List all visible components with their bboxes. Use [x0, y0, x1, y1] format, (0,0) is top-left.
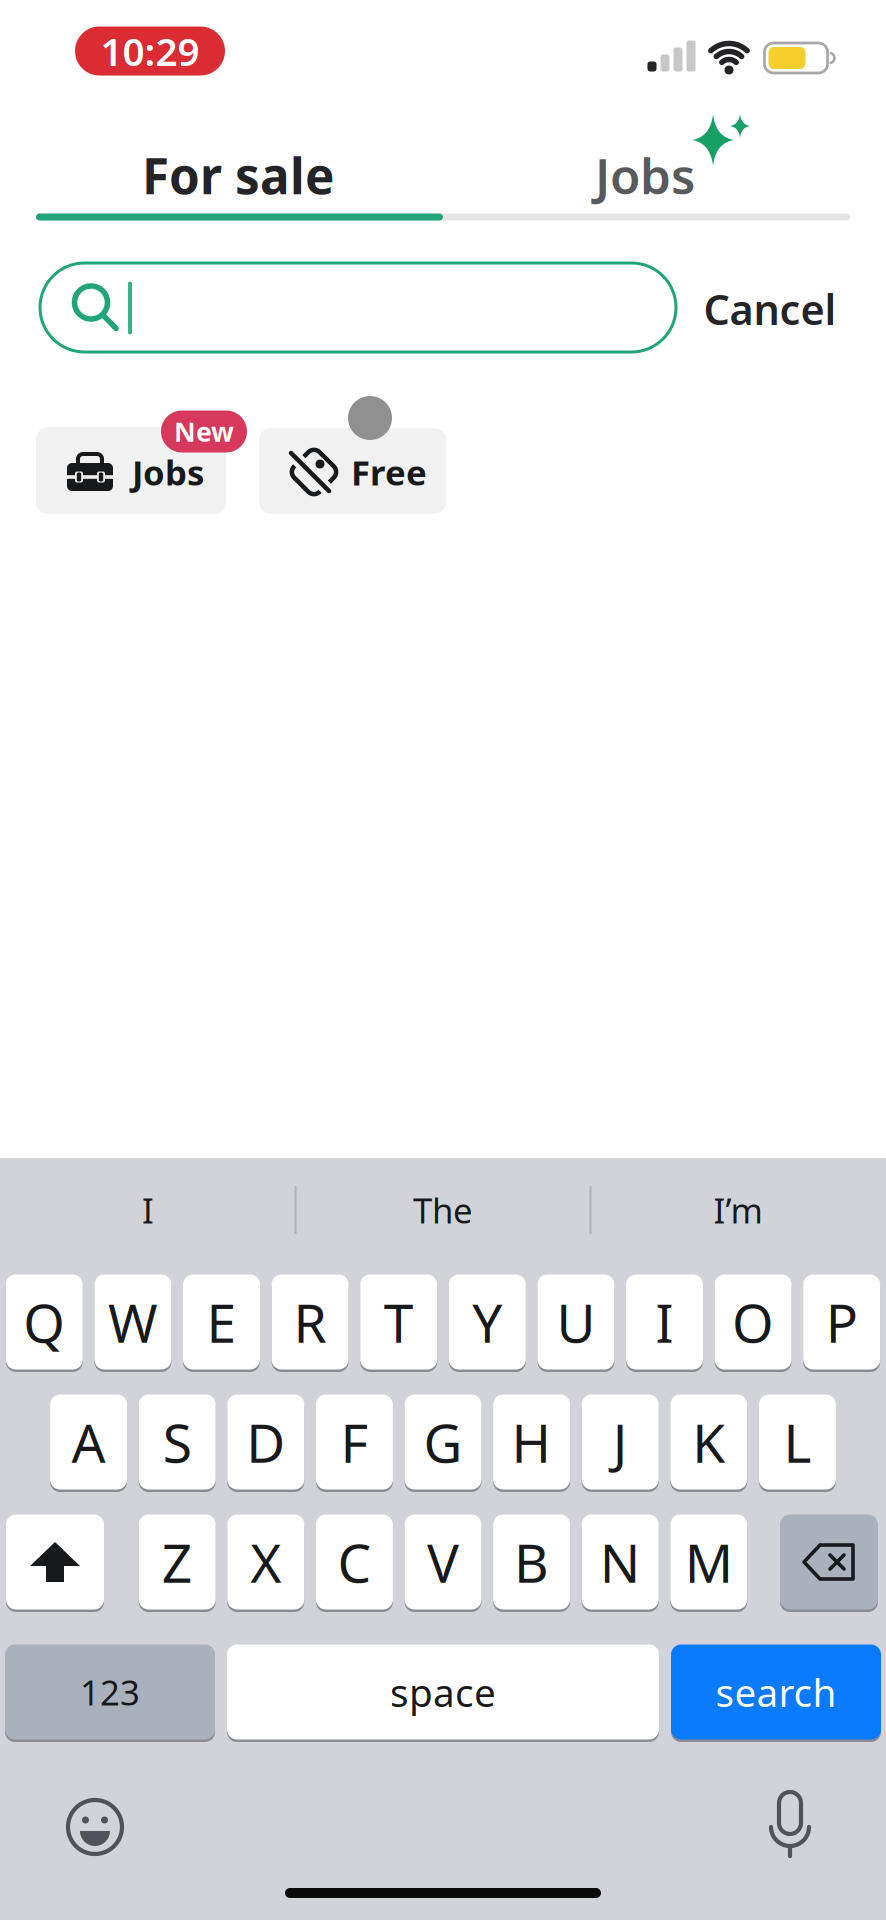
staticText: Z [162, 1527, 193, 1597]
button[interactable]: Jobs [36, 427, 226, 514]
button[interactable]: M [670, 1514, 747, 1612]
button[interactable]: Free [259, 428, 446, 514]
staticText: The [413, 1187, 473, 1233]
staticText: K [692, 1407, 725, 1477]
staticText: H [512, 1407, 552, 1477]
button[interactable]: Emoji [55, 1787, 135, 1867]
button[interactable]: I’m [598, 1165, 878, 1255]
button[interactable]: T [360, 1274, 437, 1372]
staticText: S [163, 1407, 192, 1477]
button[interactable]: K [670, 1394, 747, 1492]
button[interactable]: space [227, 1644, 659, 1742]
staticText: C [337, 1527, 371, 1597]
staticText: G [423, 1407, 462, 1477]
staticText: F [340, 1407, 368, 1477]
button[interactable]: A [50, 1394, 127, 1492]
staticText: search [715, 1666, 836, 1718]
button[interactable]: B [493, 1514, 570, 1612]
button[interactable]: S [139, 1394, 216, 1492]
staticText: B [514, 1527, 549, 1597]
button[interactable]: L [759, 1394, 836, 1492]
staticText: T [384, 1287, 414, 1357]
button[interactable]: C [316, 1514, 393, 1612]
staticText: L [783, 1407, 811, 1477]
button[interactable]: Dictation [750, 1785, 830, 1865]
staticText: J [613, 1407, 628, 1477]
staticText: Cancel [703, 282, 836, 336]
button[interactable]: R [272, 1274, 349, 1372]
button[interactable]: F [316, 1394, 393, 1492]
button[interactable]: P [803, 1274, 880, 1372]
button[interactable]: W [94, 1274, 171, 1372]
button[interactable]: Shift [6, 1514, 104, 1612]
button[interactable]: Search [40, 263, 676, 352]
button[interactable]: J [582, 1394, 659, 1492]
staticText: New [174, 414, 234, 449]
button[interactable]: D [227, 1394, 304, 1492]
staticText: 123 [80, 1669, 140, 1715]
button[interactable]: 123 [5, 1644, 215, 1742]
button[interactable]: For sale [88, 135, 388, 215]
staticText: U [556, 1287, 595, 1357]
button[interactable]: G [404, 1394, 481, 1492]
button[interactable]: I [8, 1165, 288, 1255]
button[interactable]: I [626, 1274, 703, 1372]
staticText: O [732, 1287, 774, 1357]
button[interactable]: H [493, 1394, 570, 1492]
button[interactable]: O [715, 1274, 792, 1372]
staticText: Jobs [132, 449, 204, 495]
button[interactable]: U [537, 1274, 614, 1372]
button[interactable]: Jobs [535, 135, 755, 215]
button[interactable]: Q [6, 1274, 83, 1372]
button[interactable]: Stop screen recording [75, 26, 225, 75]
button[interactable]: Cancel [655, 269, 885, 349]
staticText: V [427, 1527, 459, 1597]
staticText: space [390, 1666, 496, 1718]
staticText: For sale [142, 142, 334, 208]
button[interactable]: N [582, 1514, 659, 1612]
staticText: I [655, 1287, 673, 1357]
button[interactable]: Z [139, 1514, 216, 1612]
button[interactable]: search [671, 1644, 881, 1742]
staticText: X [250, 1527, 281, 1597]
staticText: Free [351, 449, 427, 495]
button[interactable]: V [404, 1514, 481, 1612]
staticText: A [72, 1407, 106, 1477]
staticText: Y [472, 1287, 502, 1357]
staticText: N [600, 1527, 641, 1597]
staticText: I’m [713, 1187, 762, 1233]
staticText: 10:29 [100, 25, 199, 77]
staticText: W [108, 1287, 158, 1357]
staticText: R [294, 1287, 327, 1357]
staticText: I [142, 1187, 154, 1233]
button[interactable]: X [227, 1514, 304, 1612]
staticText: P [826, 1287, 858, 1357]
button[interactable]: E [183, 1274, 260, 1372]
button[interactable]: Y [449, 1274, 526, 1372]
staticText: E [206, 1287, 236, 1357]
button[interactable]: The [303, 1165, 583, 1255]
button[interactable]: Delete [780, 1514, 878, 1612]
staticText: D [246, 1407, 285, 1477]
staticText: Q [23, 1287, 65, 1357]
staticText: M [685, 1527, 733, 1597]
staticText: Jobs [595, 142, 695, 208]
